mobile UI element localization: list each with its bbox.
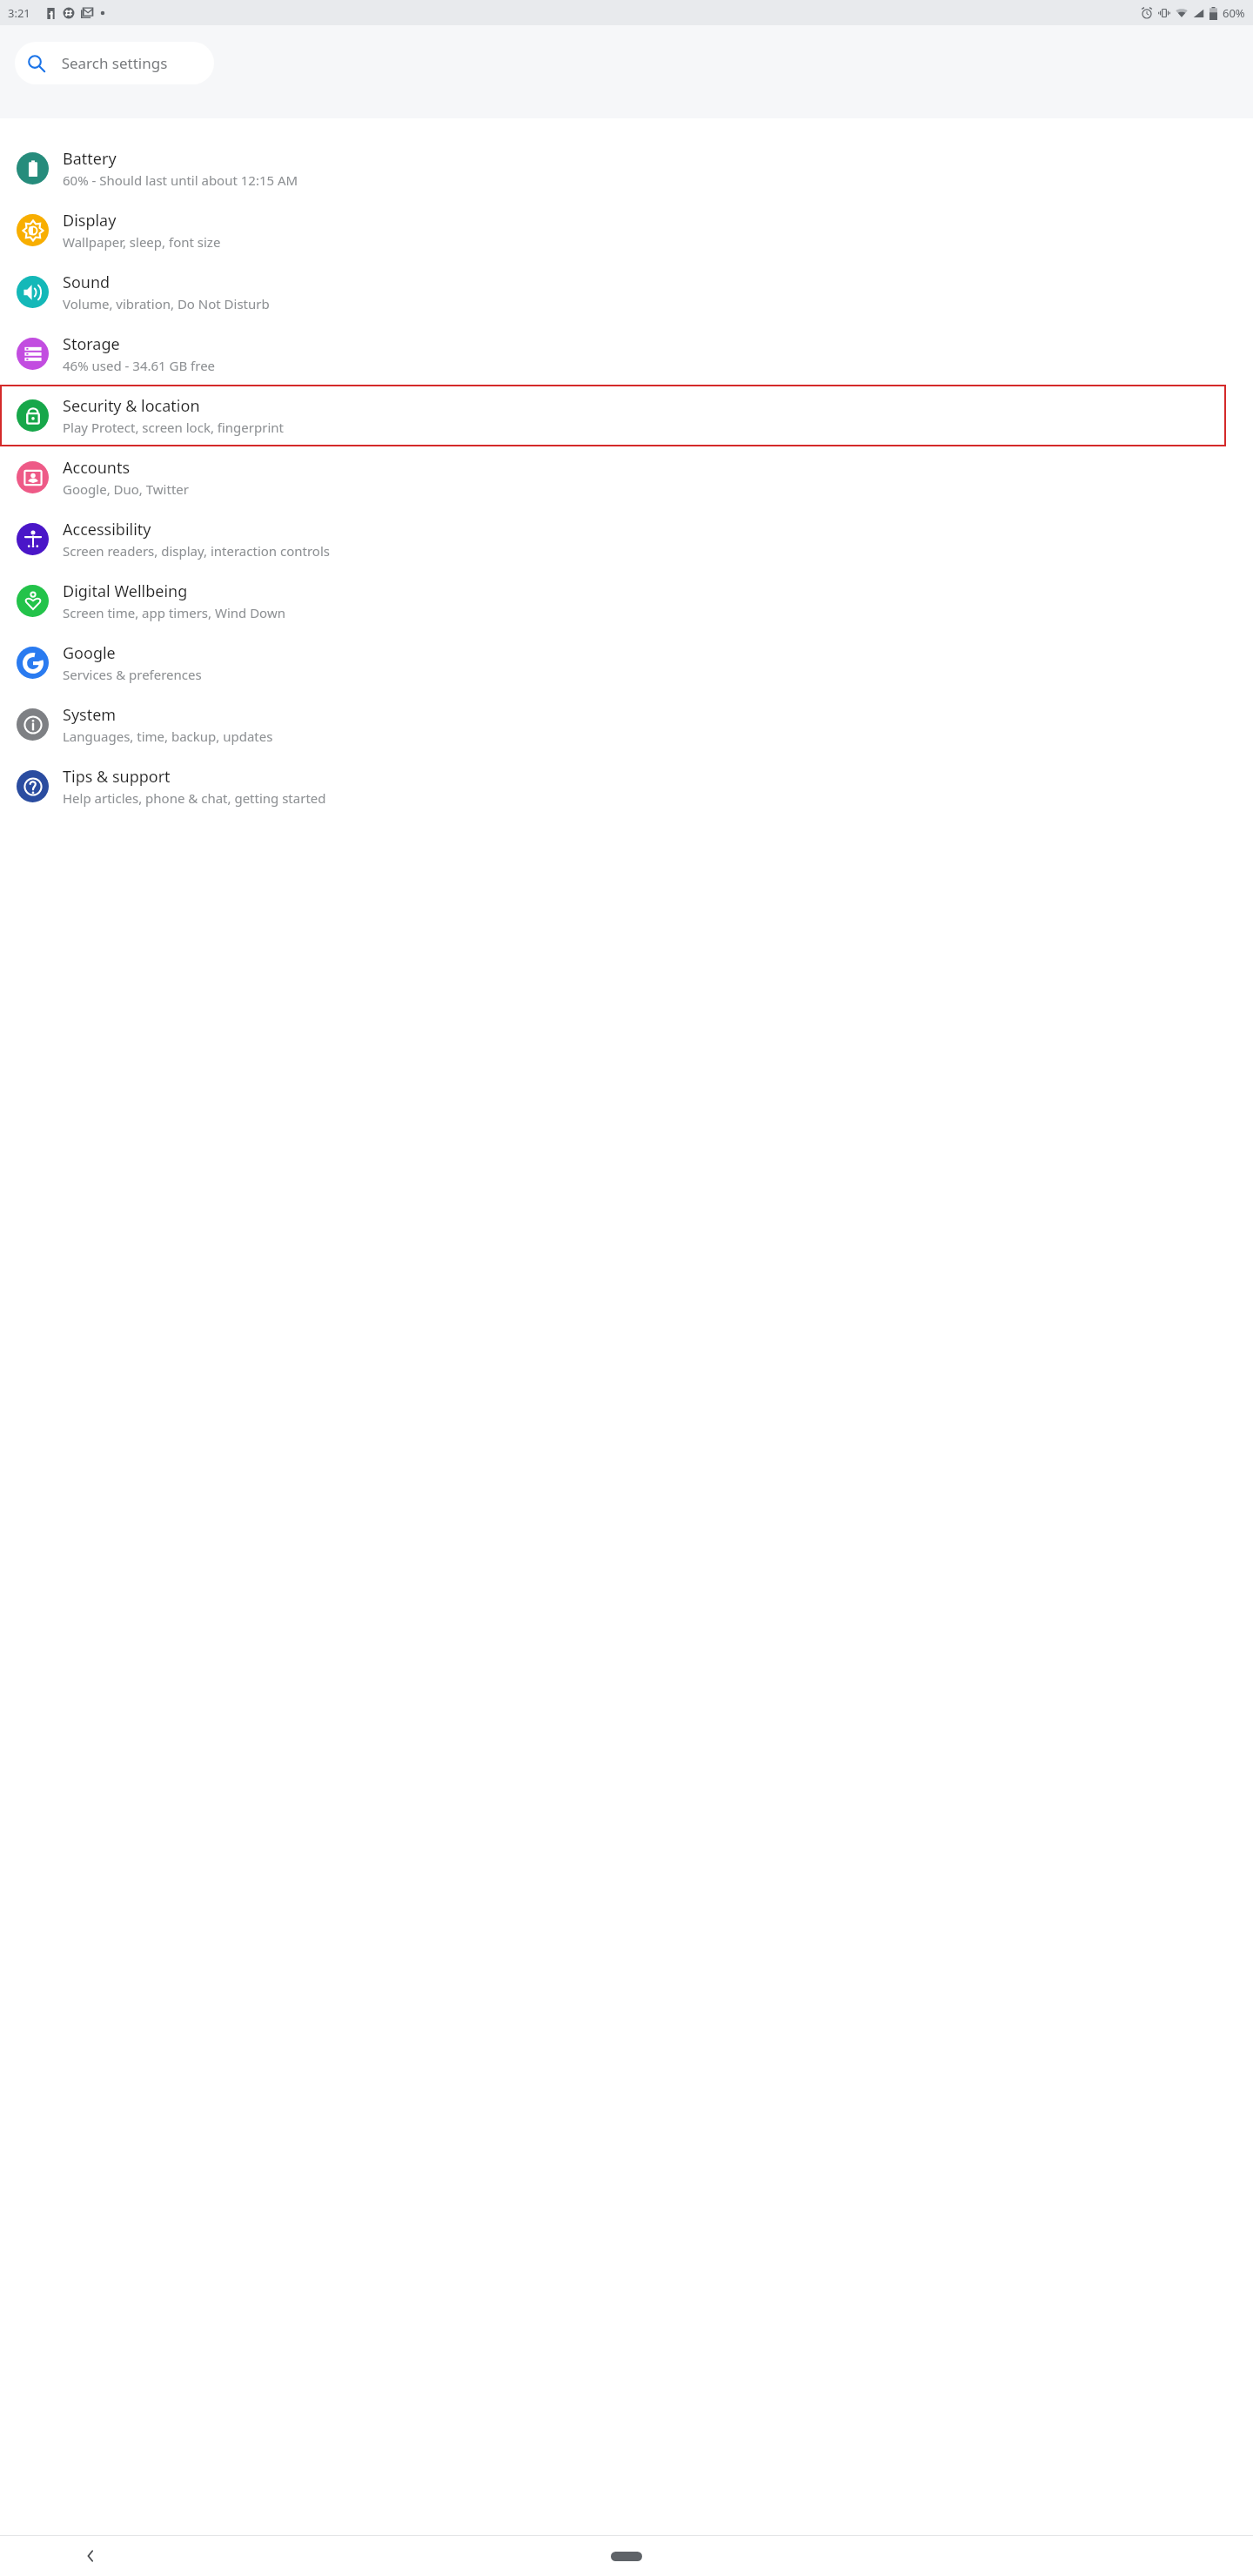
button[interactable]: Storage [0,323,1253,385]
staticText: Display [63,210,117,231]
staticText: Tips & support [63,766,171,788]
staticText: Security & location [63,395,200,417]
staticText: Volume, vibration, Do Not Disturb [63,295,270,312]
staticText: 3:21 [8,5,30,21]
button[interactable]: Back [75,2540,106,2572]
button[interactable]: Digital Wellbeing [0,570,1253,632]
button[interactable]: System [0,694,1253,755]
button[interactable]: Battery [0,138,1253,199]
staticText: Screen time, app timers, Wind Down [63,604,285,621]
staticText: Storage [63,333,120,355]
button[interactable]: Security & location [0,385,1226,446]
button[interactable]: Display [0,199,1253,261]
staticText: Languages, time, backup, updates [63,728,273,745]
button[interactable]: Sound [0,261,1253,323]
staticText: Accessibility [63,519,151,540]
staticText: 60% - Should last until about 12:15 AM [63,171,298,189]
staticText: Screen readers, display, interaction con… [63,542,330,560]
staticText: Play Protect, screen lock, fingerprint [63,419,284,436]
button[interactable]: Tips & support [0,755,1253,817]
staticText: 60% [1223,5,1245,21]
staticText: System [63,704,117,726]
button[interactable]: Search settings [15,42,214,84]
staticText: Services & preferences [63,666,202,683]
staticText: Accounts [63,457,131,479]
staticText: Sound [63,272,111,293]
button[interactable]: Home [604,2545,649,2567]
staticText: Help articles, phone & chat, getting sta… [63,789,326,807]
staticText: 46% used - 34.61 GB free [63,357,216,374]
staticText: Google, Duo, Twitter [63,480,189,498]
staticText: Wallpaper, sleep, font size [63,233,221,251]
staticText: Google [63,642,116,664]
button[interactable]: Accounts [0,446,1253,508]
staticText: Digital Wellbeing [63,580,188,602]
button[interactable]: Google [0,632,1253,694]
staticText: Battery [63,148,117,170]
staticText: Search settings [15,53,214,73]
button[interactable]: Accessibility [0,508,1253,570]
